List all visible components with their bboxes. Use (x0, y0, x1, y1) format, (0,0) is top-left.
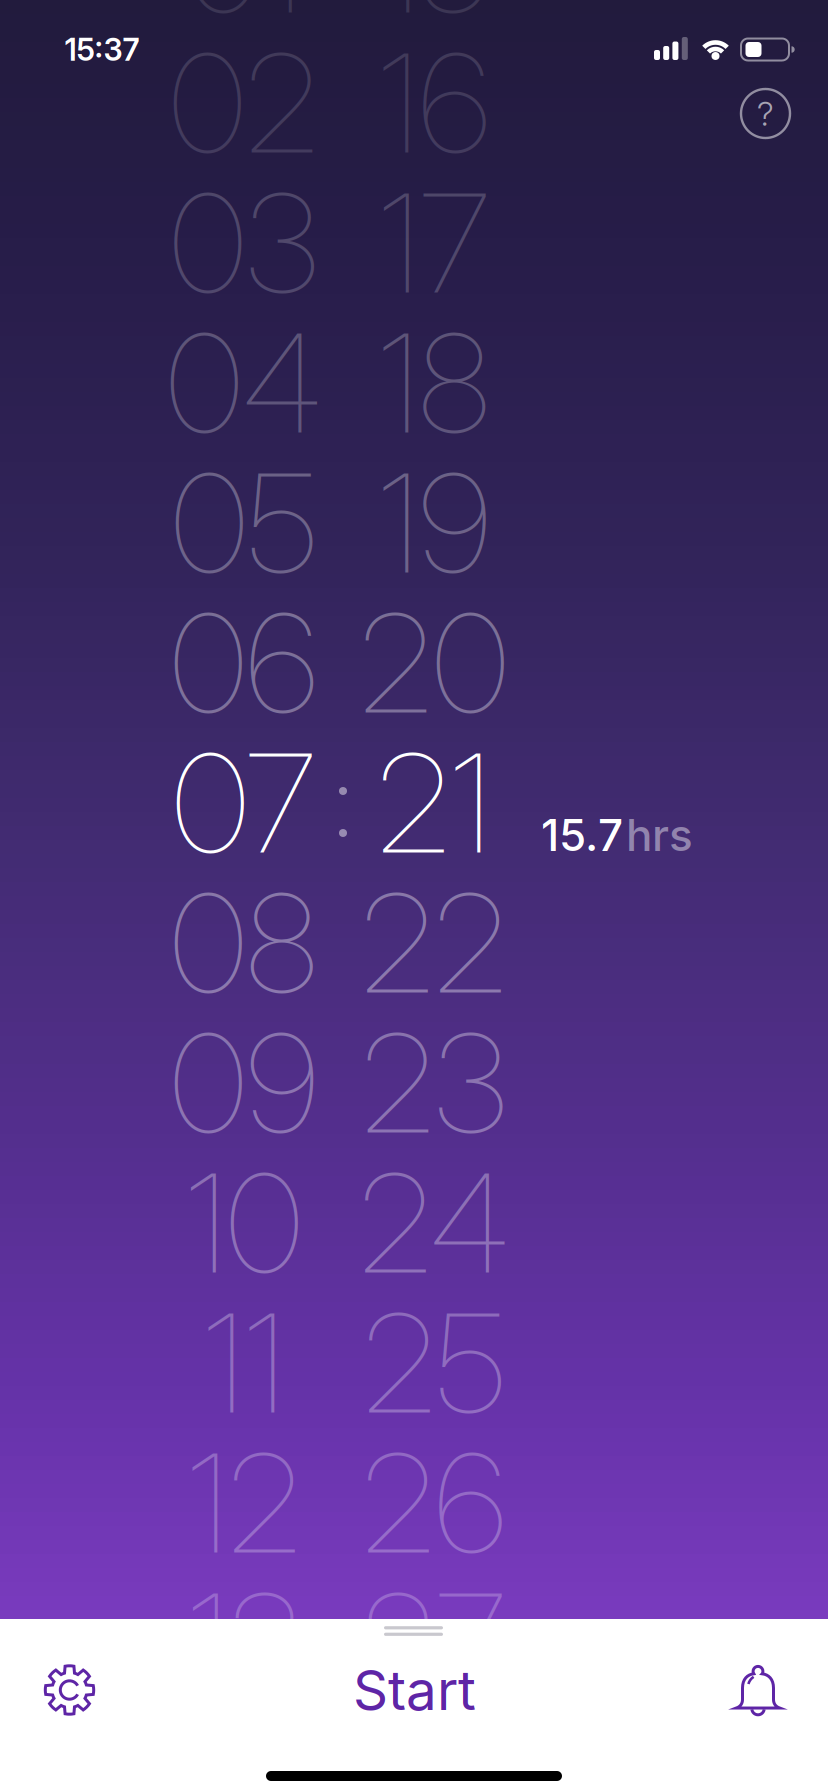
staticText: 23 (361, 1001, 506, 1165)
staticText: ? (757, 93, 774, 134)
staticText: 13 (187, 1561, 300, 1725)
staticText: 27 (362, 1561, 505, 1725)
staticText: 22 (361, 861, 507, 1025)
staticText: 01 (185, 0, 302, 45)
staticText: 03 (170, 161, 318, 325)
button[interactable]: Settings (41, 1662, 97, 1718)
button[interactable]: Start (353, 1657, 476, 1723)
staticText: Start (353, 1657, 476, 1723)
staticText: 06 (170, 581, 317, 745)
staticText: 19 (378, 441, 490, 605)
staticText: 08 (170, 861, 317, 1025)
staticText: 15.7 (541, 808, 623, 862)
staticText: 04 (166, 301, 321, 465)
button[interactable]: Alarm (730, 1662, 786, 1718)
staticText: 25 (363, 1281, 505, 1445)
staticText: 26 (362, 1421, 506, 1585)
staticText: 21 (377, 721, 491, 885)
staticText: 24 (359, 1141, 509, 1305)
staticText: 07 (172, 721, 315, 885)
staticText: 18 (378, 301, 490, 465)
staticText: 09 (170, 1001, 317, 1165)
staticText: 17 (378, 161, 489, 325)
staticText: 10 (185, 1141, 302, 1305)
button[interactable]: Help (741, 89, 790, 138)
staticText: 15 (379, 0, 489, 45)
staticText: 02 (169, 21, 318, 185)
staticText: 16 (378, 21, 490, 185)
staticText: 20 (359, 581, 508, 745)
staticText: 05 (171, 441, 316, 605)
staticText: 12 (187, 1421, 301, 1585)
staticText: 15:37 (64, 31, 139, 68)
staticText: 11 (203, 1281, 285, 1445)
staticText: hrs (626, 808, 693, 862)
